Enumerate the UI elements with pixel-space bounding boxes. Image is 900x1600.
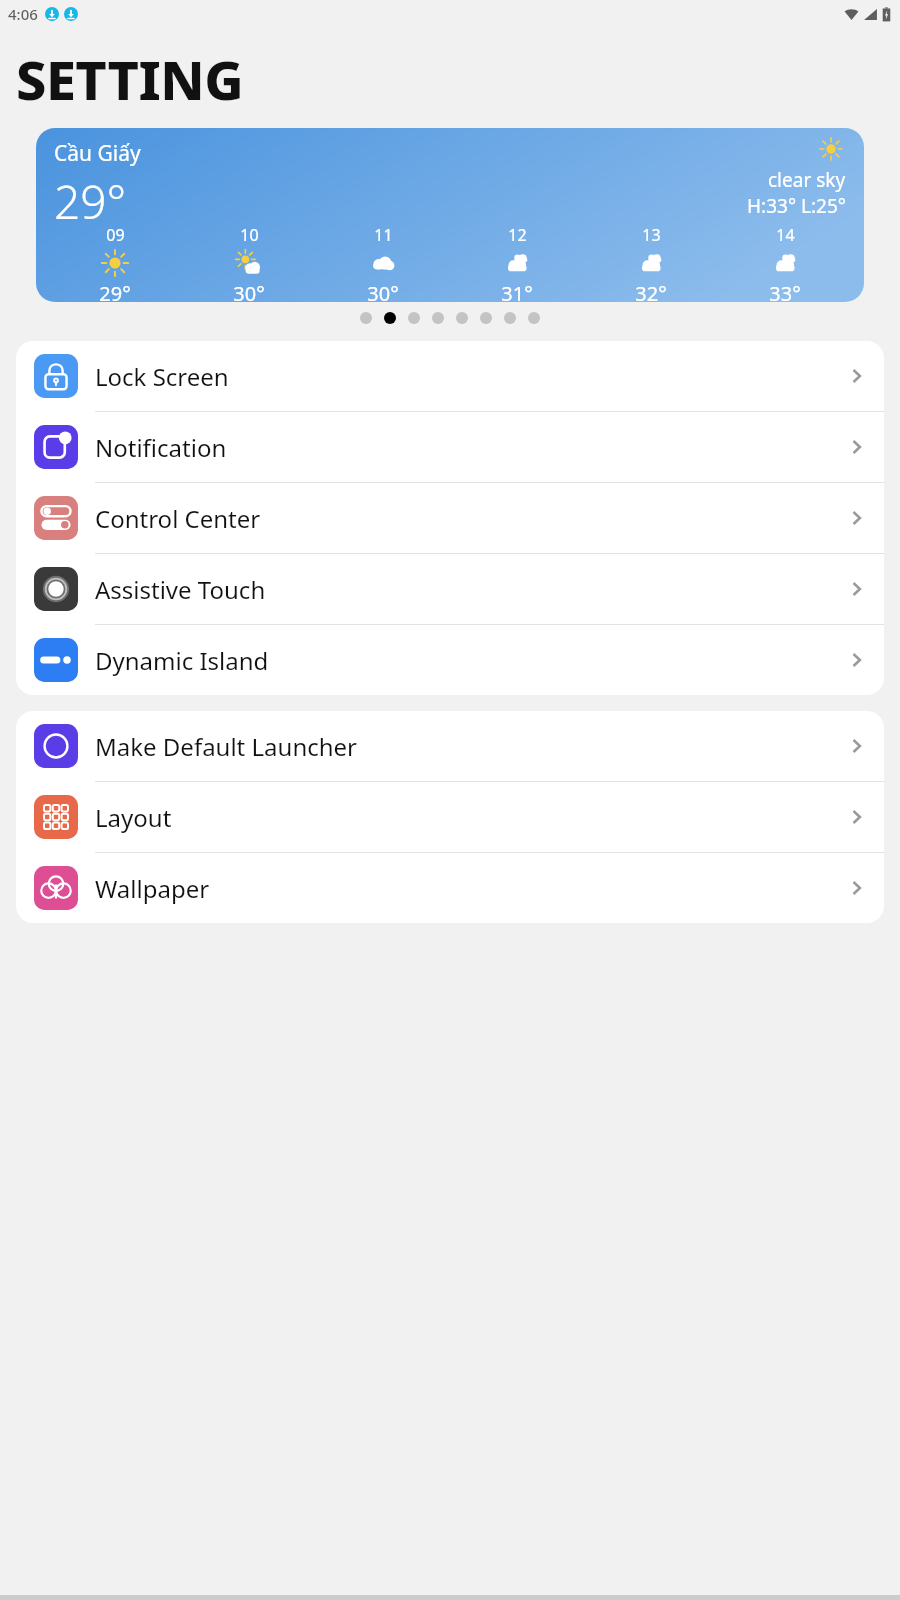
- staticText: Control Center: [95, 502, 848, 535]
- button[interactable]: Make Default Launcher: [16, 711, 884, 781]
- button[interactable]: Control Center: [16, 483, 884, 553]
- staticText: 29°: [99, 280, 131, 302]
- button[interactable]: Layout: [16, 782, 884, 852]
- button[interactable]: Wallpaper: [16, 853, 884, 923]
- staticText: 13: [642, 224, 661, 246]
- staticText: 30°: [233, 280, 265, 302]
- staticText: 30°: [367, 280, 399, 302]
- staticText: 11: [374, 224, 393, 246]
- staticText: 14: [776, 224, 795, 246]
- button[interactable]: Lock Screen: [16, 341, 884, 411]
- staticText: 31°: [501, 280, 533, 302]
- staticText: 09: [106, 224, 125, 246]
- staticText: 29°: [54, 170, 127, 224]
- button[interactable]: Dynamic Island: [16, 625, 884, 695]
- staticText: Wallpaper: [95, 872, 848, 905]
- staticText: Notification: [95, 431, 848, 464]
- staticText: 12: [508, 224, 527, 246]
- button[interactable]: Assistive Touch: [16, 554, 884, 624]
- staticText: clear sky: [768, 167, 846, 193]
- staticText: SETTING: [16, 42, 244, 116]
- staticText: 32°: [635, 280, 667, 302]
- staticText: Assistive Touch: [95, 573, 848, 606]
- staticText: 10: [240, 224, 259, 246]
- staticText: Make Default Launcher: [95, 730, 848, 763]
- staticText: 33°: [769, 280, 801, 302]
- staticText: Cầu Giấy: [54, 139, 141, 168]
- button[interactable]: Cầu Giấy: [36, 128, 864, 302]
- staticText: Layout: [95, 801, 848, 834]
- button[interactable]: Notification: [16, 412, 884, 482]
- staticText: Lock Screen: [95, 360, 848, 393]
- staticText: 4:06: [8, 4, 38, 24]
- staticText: H:33° L:25°: [747, 193, 846, 219]
- staticText: Dynamic Island: [95, 644, 848, 677]
